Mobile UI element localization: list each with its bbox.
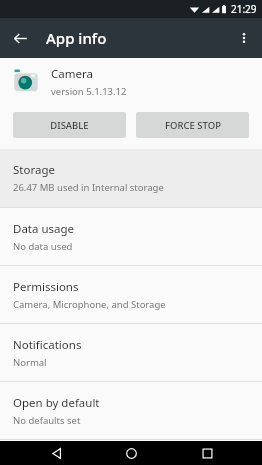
staticText: Notifications: [13, 337, 82, 353]
staticText: 21:29: [231, 2, 257, 16]
button[interactable]: Storage: [0, 149, 262, 207]
button[interactable]: More options: [230, 24, 258, 52]
staticText: Camera: [51, 66, 93, 82]
staticText: FORCE STOP: [165, 119, 221, 132]
button[interactable]: DISABLE: [13, 112, 126, 138]
button[interactable]: Back: [36, 441, 76, 465]
staticText: Open by default: [13, 395, 100, 411]
button[interactable]: Data usage: [0, 208, 262, 265]
button[interactable]: Back: [6, 24, 34, 52]
staticText: Normal: [13, 356, 47, 369]
button[interactable]: Open by default: [0, 382, 262, 439]
staticText: App info: [46, 28, 107, 48]
staticText: No data used: [13, 240, 73, 253]
staticText: DISABLE: [50, 119, 89, 132]
staticText: No defaults set: [13, 414, 81, 427]
button[interactable]: Notifications: [0, 324, 262, 381]
staticText: 26.47 MB used in Internal storage: [13, 181, 164, 194]
button[interactable]: FORCE STOP: [136, 112, 249, 138]
staticText: Storage: [13, 162, 55, 178]
staticText: Permissions: [13, 279, 79, 295]
button[interactable]: Home: [111, 441, 151, 465]
staticText: Camera, Microphone, and Storage: [13, 298, 166, 311]
button[interactable]: Permissions: [0, 266, 262, 323]
button[interactable]: Recent apps: [187, 441, 227, 465]
staticText: Data usage: [13, 221, 75, 237]
staticText: version 5.1.13.12: [51, 85, 127, 98]
